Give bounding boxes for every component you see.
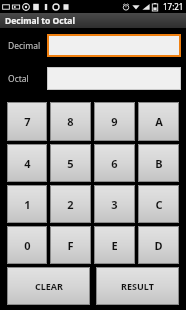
staticText: 5 — [67, 156, 74, 171]
button[interactable]: E — [94, 226, 135, 264]
button[interactable]: 4 — [7, 144, 47, 182]
staticText: 3 — [111, 197, 118, 212]
staticText: Decimal — [8, 40, 41, 52]
staticText: F — [67, 238, 74, 253]
staticText: D — [154, 238, 163, 253]
staticText: 0 — [24, 238, 31, 253]
staticText: CLEAR — [35, 280, 63, 292]
button[interactable]: F — [50, 226, 91, 264]
button[interactable]: C — [138, 185, 179, 223]
staticText: 6 — [111, 156, 118, 171]
button[interactable]: D — [138, 226, 179, 264]
staticText: Octal — [8, 73, 29, 85]
staticText: A — [155, 114, 163, 129]
button[interactable]: 1 — [7, 185, 47, 223]
button[interactable]: 2 — [50, 185, 91, 223]
staticText: 1 — [24, 197, 31, 212]
button[interactable]: 8 — [50, 102, 91, 141]
button[interactable]: 0 — [7, 226, 47, 264]
staticText: RESULT — [121, 280, 154, 292]
staticText: Decimal to Octal — [5, 15, 75, 27]
staticText: 17:21 — [163, 1, 184, 12]
staticText: B — [155, 156, 163, 171]
staticText: 9 — [111, 114, 118, 129]
button[interactable]: 6 — [94, 144, 135, 182]
button[interactable]: 9 — [94, 102, 135, 141]
staticText: 4 — [24, 156, 31, 171]
staticText: 7 — [24, 114, 31, 129]
button[interactable]: 5 — [50, 144, 91, 182]
staticText: C — [155, 197, 163, 212]
button[interactable]: 7 — [7, 102, 47, 141]
button[interactable]: B — [138, 144, 179, 182]
button[interactable] — [47, 67, 181, 90]
button[interactable]: RESULT — [96, 267, 179, 305]
staticText: E — [111, 238, 118, 253]
button[interactable]: A — [138, 102, 179, 141]
button[interactable]: 3 — [94, 185, 135, 223]
staticText: 8 — [67, 114, 74, 129]
button[interactable] — [47, 34, 181, 57]
staticText: 2 — [67, 197, 74, 212]
button[interactable]: CLEAR — [7, 267, 90, 305]
